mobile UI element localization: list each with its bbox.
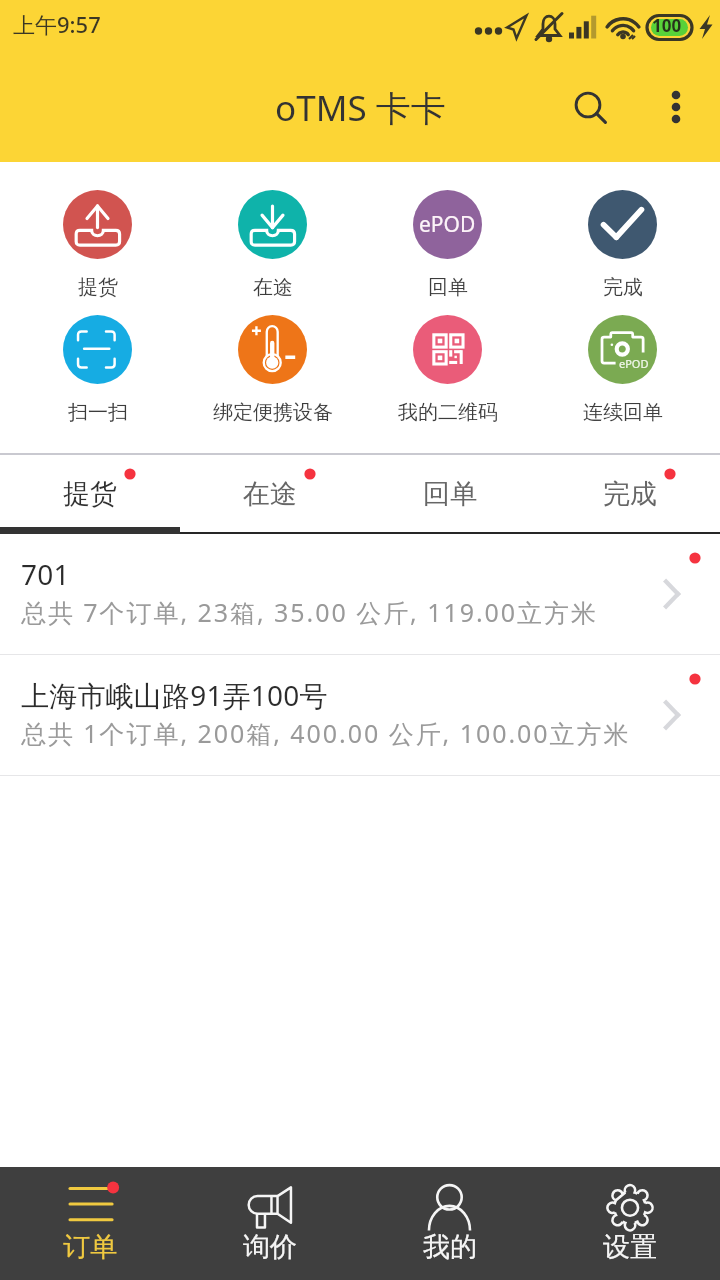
staticText: 提货	[78, 275, 118, 300]
staticText: 上海市峨山路91弄100号	[21, 676, 328, 714]
staticText: 上午9:57	[13, 9, 101, 39]
staticText: 在途	[243, 477, 297, 511]
staticText: 总共 1个订单, 200箱, 400.00 公斤, 100.00立方米	[21, 716, 631, 750]
button[interactable]: 设置	[540, 1167, 720, 1280]
staticText: 总共 7个订单, 23箱, 35.00 公斤, 119.00立方米	[21, 595, 598, 629]
staticText: 我的	[423, 1230, 477, 1264]
button[interactable]: 完成	[540, 455, 720, 534]
button[interactable]: 我的	[360, 1167, 540, 1280]
button[interactable]: 提货	[10, 190, 185, 300]
button[interactable]: 上海市峨山路91弄100号	[0, 655, 720, 775]
button[interactable]: 701	[0, 534, 720, 654]
staticText: 回单	[428, 275, 468, 300]
staticText: 在途	[253, 275, 293, 300]
staticText: 完成	[603, 275, 643, 300]
staticText: 询价	[243, 1230, 297, 1264]
staticText: 绑定便携设备	[213, 400, 333, 425]
button[interactable]: 询价	[180, 1167, 360, 1280]
staticText: 连续回单	[583, 400, 663, 425]
staticText: 我的二维码	[398, 400, 498, 425]
staticText: 完成	[603, 477, 657, 511]
button[interactable]: 在途	[185, 190, 360, 300]
button[interactable]: 完成	[535, 190, 710, 300]
staticText: 回单	[423, 477, 477, 511]
staticText: oTMS 卡卡	[275, 84, 446, 132]
button[interactable]: 订单	[0, 1167, 180, 1280]
button[interactable]: More options	[632, 55, 720, 162]
staticText: 提货	[63, 477, 117, 511]
staticText: 订单	[63, 1230, 117, 1264]
staticText: ePOD	[419, 210, 476, 239]
button[interactable]: 在途	[180, 455, 360, 534]
button[interactable]: 提货	[0, 455, 180, 534]
button[interactable]: 绑定便携设备	[185, 315, 360, 425]
button[interactable]: 扫一扫	[10, 315, 185, 425]
button[interactable]: Search	[546, 55, 632, 162]
staticText: 设置	[603, 1230, 657, 1264]
staticText: 100	[652, 14, 682, 37]
button[interactable]: 回单	[360, 455, 540, 534]
staticText: 扫一扫	[68, 400, 128, 425]
button[interactable]: ePOD	[360, 190, 535, 300]
button[interactable]: 我的二维码	[360, 315, 535, 425]
staticText: ePOD	[619, 356, 649, 371]
staticText: 701	[21, 555, 70, 593]
button[interactable]: ePOD	[535, 315, 710, 425]
